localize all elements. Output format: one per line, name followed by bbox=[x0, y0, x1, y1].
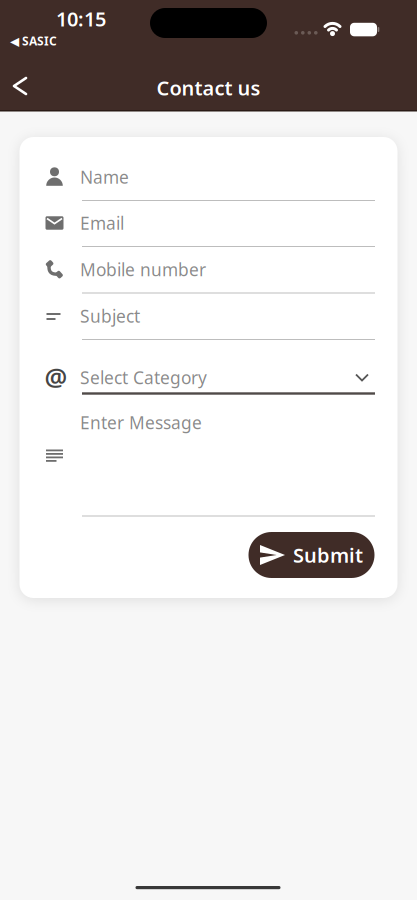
staticText: Name bbox=[80, 165, 129, 188]
button[interactable]: Submit bbox=[248, 532, 374, 578]
button[interactable]: Mobile number bbox=[80, 255, 376, 296]
button[interactable]: Select Category bbox=[82, 363, 375, 396]
staticText: 10:15 bbox=[56, 5, 106, 32]
staticText: Submit bbox=[293, 542, 363, 568]
staticText: Subject bbox=[80, 304, 140, 327]
staticText: Select Category bbox=[80, 366, 207, 389]
button[interactable]: Name bbox=[80, 163, 376, 204]
button[interactable] bbox=[2, 63, 46, 107]
staticText: Email bbox=[80, 211, 124, 234]
button[interactable]: Email bbox=[80, 209, 376, 250]
button[interactable]: Enter Message bbox=[80, 408, 376, 519]
staticText: @ bbox=[44, 360, 67, 394]
button[interactable]: Subject bbox=[80, 302, 376, 343]
staticText: Contact us bbox=[156, 74, 260, 101]
staticText: ◀ SASIC bbox=[10, 33, 57, 49]
staticText: Mobile number bbox=[80, 258, 206, 281]
staticText: Enter Message bbox=[80, 411, 202, 434]
